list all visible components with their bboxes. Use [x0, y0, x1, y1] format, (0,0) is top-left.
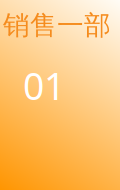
staticText: 01	[23, 61, 65, 110]
staticText: 销售一部	[3, 9, 111, 42]
